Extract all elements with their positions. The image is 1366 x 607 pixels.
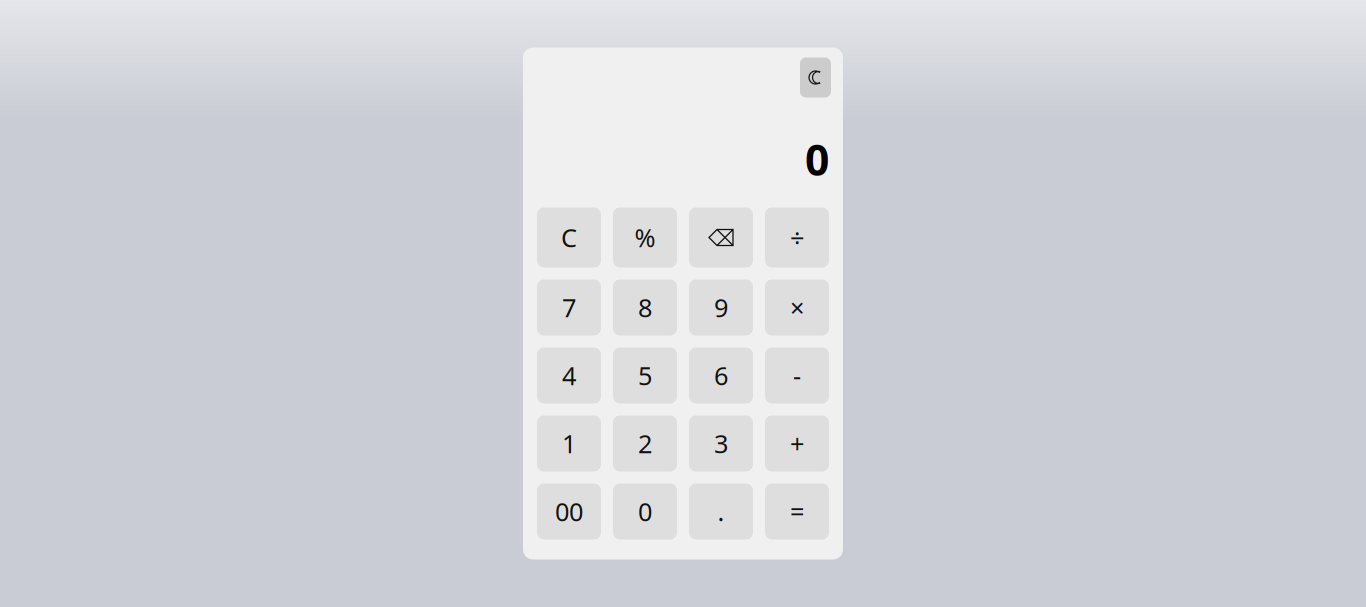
button[interactable]: + bbox=[765, 415, 829, 471]
button[interactable]: 5 bbox=[613, 347, 677, 403]
button[interactable]: Toggle dark mode bbox=[800, 57, 831, 97]
button[interactable]: 6 bbox=[689, 347, 753, 403]
button[interactable]: × bbox=[765, 279, 829, 335]
staticText: 0 bbox=[638, 495, 652, 528]
button[interactable]: 9 bbox=[689, 279, 753, 335]
button[interactable]: Delete bbox=[689, 207, 753, 267]
button[interactable]: 2 bbox=[613, 415, 677, 471]
button[interactable]: 1 bbox=[537, 415, 601, 471]
staticText: ÷ bbox=[790, 221, 804, 254]
staticText: 00 bbox=[555, 495, 583, 528]
staticText: 2 bbox=[638, 427, 652, 460]
staticText: = bbox=[790, 495, 804, 528]
button[interactable]: 0 bbox=[613, 483, 677, 539]
button[interactable]: 7 bbox=[537, 279, 601, 335]
button[interactable]: . bbox=[689, 483, 753, 539]
staticText: - bbox=[793, 359, 801, 392]
staticText: 9 bbox=[714, 291, 728, 324]
staticText: 0 bbox=[805, 131, 829, 187]
staticText: + bbox=[790, 427, 804, 460]
button[interactable]: 3 bbox=[689, 415, 753, 471]
staticText: C bbox=[561, 221, 577, 254]
staticText: 1 bbox=[562, 427, 576, 460]
button[interactable]: ÷ bbox=[765, 207, 829, 267]
staticText: 5 bbox=[638, 359, 652, 392]
button[interactable]: 00 bbox=[537, 483, 601, 539]
button[interactable]: 8 bbox=[613, 279, 677, 335]
staticText: 3 bbox=[714, 427, 728, 460]
staticText: 4 bbox=[562, 359, 576, 392]
button[interactable]: - bbox=[765, 347, 829, 403]
button[interactable]: % bbox=[613, 207, 677, 267]
staticText: % bbox=[634, 221, 655, 254]
button[interactable]: 4 bbox=[537, 347, 601, 403]
staticText: 7 bbox=[562, 291, 576, 324]
button[interactable]: = bbox=[765, 483, 829, 539]
staticText: 8 bbox=[638, 291, 652, 324]
staticText: 6 bbox=[714, 359, 728, 392]
staticText: × bbox=[790, 291, 804, 324]
staticText: . bbox=[717, 495, 724, 528]
button[interactable]: C bbox=[537, 207, 601, 267]
